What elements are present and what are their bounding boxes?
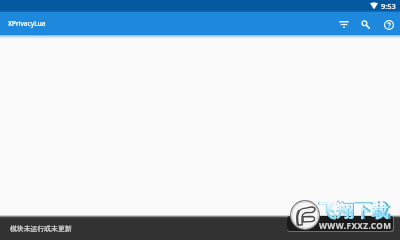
staticText: 模块未运行或未更新 (10, 224, 72, 233)
staticText: XPrivacyLua (8, 19, 46, 28)
staticText: 飞翔下载 (318, 199, 391, 222)
button[interactable]: Filter (332, 13, 355, 36)
staticText: 9:53 (381, 1, 396, 11)
staticText: WWW.FXXZ.COM (319, 220, 392, 231)
button[interactable]: Search (354, 13, 377, 36)
staticText: 飞翔下载 (319, 200, 389, 222)
button[interactable]: Help (377, 13, 400, 36)
button[interactable]: 模块未运行或未更新 (0, 215, 400, 240)
